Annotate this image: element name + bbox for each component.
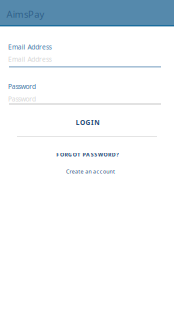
staticText: AimsPay: [6, 8, 44, 20]
staticText: Email Address: [8, 55, 52, 64]
staticText: LOGIN: [76, 118, 99, 127]
staticText: Password: [8, 94, 36, 103]
staticText: Create an account: [66, 168, 115, 175]
button[interactable]: FORGOT PASSWORD?: [1, 148, 174, 160]
button[interactable]: LOGIN: [0, 114, 174, 130]
button[interactable]: Create an account: [3, 165, 174, 177]
staticText: Email Address: [8, 42, 52, 51]
staticText: FORGOT PASSWORD?: [56, 151, 119, 158]
staticText: Password: [8, 82, 36, 91]
